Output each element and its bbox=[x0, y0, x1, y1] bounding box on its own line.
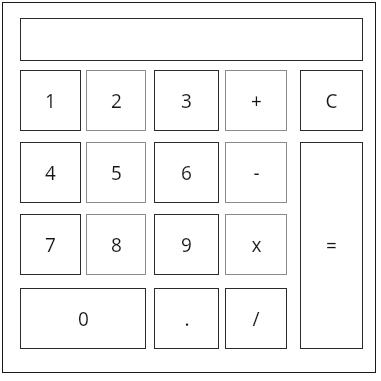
button[interactable]: 3 bbox=[154, 70, 219, 131]
staticText: 4 bbox=[45, 160, 56, 186]
button[interactable]: - bbox=[225, 142, 287, 203]
staticText: 3 bbox=[181, 88, 192, 114]
button[interactable]: = bbox=[300, 142, 363, 349]
button[interactable]: 9 bbox=[154, 214, 219, 275]
staticText: 1 bbox=[45, 88, 56, 114]
button[interactable]: C bbox=[300, 70, 363, 131]
staticText: 7 bbox=[45, 232, 56, 258]
button[interactable]: x bbox=[225, 214, 287, 275]
staticText: x bbox=[251, 232, 262, 258]
staticText: 9 bbox=[181, 232, 192, 258]
staticText: = bbox=[326, 233, 337, 259]
staticText: 2 bbox=[111, 88, 122, 114]
button[interactable]: 0 bbox=[20, 288, 146, 349]
button[interactable]: 8 bbox=[86, 214, 146, 275]
button[interactable]: 2 bbox=[86, 70, 146, 131]
staticText: 5 bbox=[111, 160, 122, 186]
button[interactable]: + bbox=[225, 70, 287, 131]
button[interactable]: 5 bbox=[86, 142, 146, 203]
button[interactable]: 4 bbox=[20, 142, 81, 203]
staticText: - bbox=[253, 160, 260, 186]
button[interactable] bbox=[20, 18, 363, 61]
staticText: . bbox=[184, 306, 190, 332]
button[interactable]: . bbox=[154, 288, 219, 349]
staticText: 0 bbox=[78, 306, 89, 332]
button[interactable]: 7 bbox=[20, 214, 81, 275]
staticText: + bbox=[251, 88, 262, 114]
staticText: 6 bbox=[181, 160, 192, 186]
staticText: C bbox=[325, 88, 338, 114]
button[interactable]: 1 bbox=[20, 70, 81, 131]
button[interactable]: / bbox=[225, 288, 287, 349]
button[interactable]: 6 bbox=[154, 142, 219, 203]
staticText: / bbox=[252, 306, 260, 332]
staticText: 8 bbox=[111, 232, 122, 258]
